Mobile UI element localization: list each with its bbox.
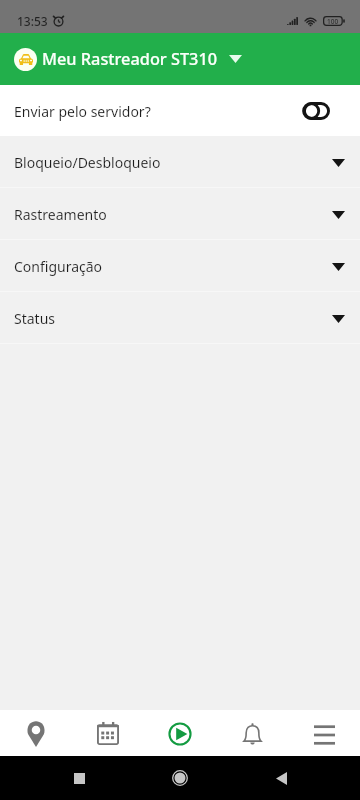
button[interactable]: Recentes [57, 756, 101, 800]
button[interactable]: Iniciar [144, 710, 216, 756]
button[interactable]: Voltar [259, 756, 303, 800]
staticText: Rastreamento [14, 205, 107, 224]
staticText: Enviar pelo servidor? [14, 102, 151, 121]
button[interactable]: Status [0, 292, 360, 343]
staticText: Configuração [14, 257, 103, 276]
button[interactable]: Bloqueio/Desbloqueio [0, 136, 360, 187]
button[interactable]: Início [158, 756, 202, 800]
button[interactable]: Histórico [72, 710, 144, 756]
button[interactable]: Menu [288, 710, 360, 756]
staticText: Status [14, 309, 56, 328]
button[interactable]: Rastreamento [0, 188, 360, 239]
button[interactable]: Enviar pelo servidor? [0, 85, 360, 136]
staticText: Meu Rastreador ST310 [42, 48, 218, 70]
button[interactable]: Configuração [0, 240, 360, 291]
button[interactable]: Localização [0, 710, 72, 756]
button[interactable]: Selecionar rastreador [224, 48, 246, 70]
button[interactable]: Notificações [216, 710, 288, 756]
staticText: 100 [327, 17, 339, 26]
staticText: Bloqueio/Desbloqueio [14, 153, 161, 172]
staticText: 13:53 [17, 13, 48, 29]
